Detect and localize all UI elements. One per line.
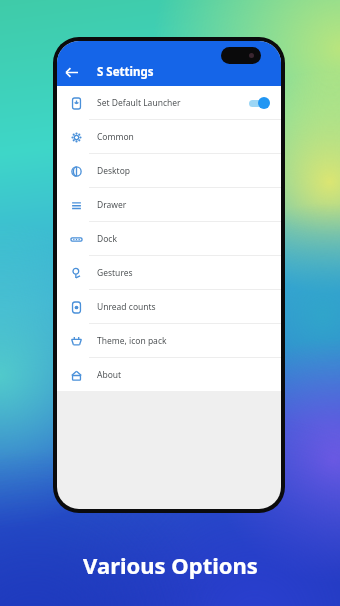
staticText: Common — [97, 131, 134, 143]
staticText: Desktop — [97, 165, 131, 177]
button[interactable]: Gestures — [57, 256, 281, 289]
button[interactable]: Theme, icon pack — [57, 324, 281, 357]
staticText: Theme, icon pack — [97, 335, 167, 347]
staticText: Unread counts — [97, 301, 156, 313]
staticText: Set Default Launcher — [97, 97, 181, 109]
staticText: S Settings — [97, 64, 154, 80]
button[interactable]: Drawer — [57, 188, 281, 221]
staticText: About — [97, 369, 122, 381]
staticText: Gestures — [97, 267, 133, 279]
staticText: Dock — [97, 233, 117, 245]
button[interactable]: Back — [57, 58, 85, 86]
staticText: Drawer — [97, 199, 127, 211]
button[interactable]: Desktop — [57, 154, 281, 187]
button[interactable]: Toggle default launcher — [247, 96, 271, 110]
button[interactable]: About — [57, 358, 281, 391]
button[interactable]: Common — [57, 120, 281, 153]
staticText: Various Options — [83, 550, 258, 580]
button[interactable]: Unread counts — [57, 290, 281, 323]
button[interactable]: Dock — [57, 222, 281, 255]
button[interactable]: Set Default Launcher — [57, 86, 281, 119]
